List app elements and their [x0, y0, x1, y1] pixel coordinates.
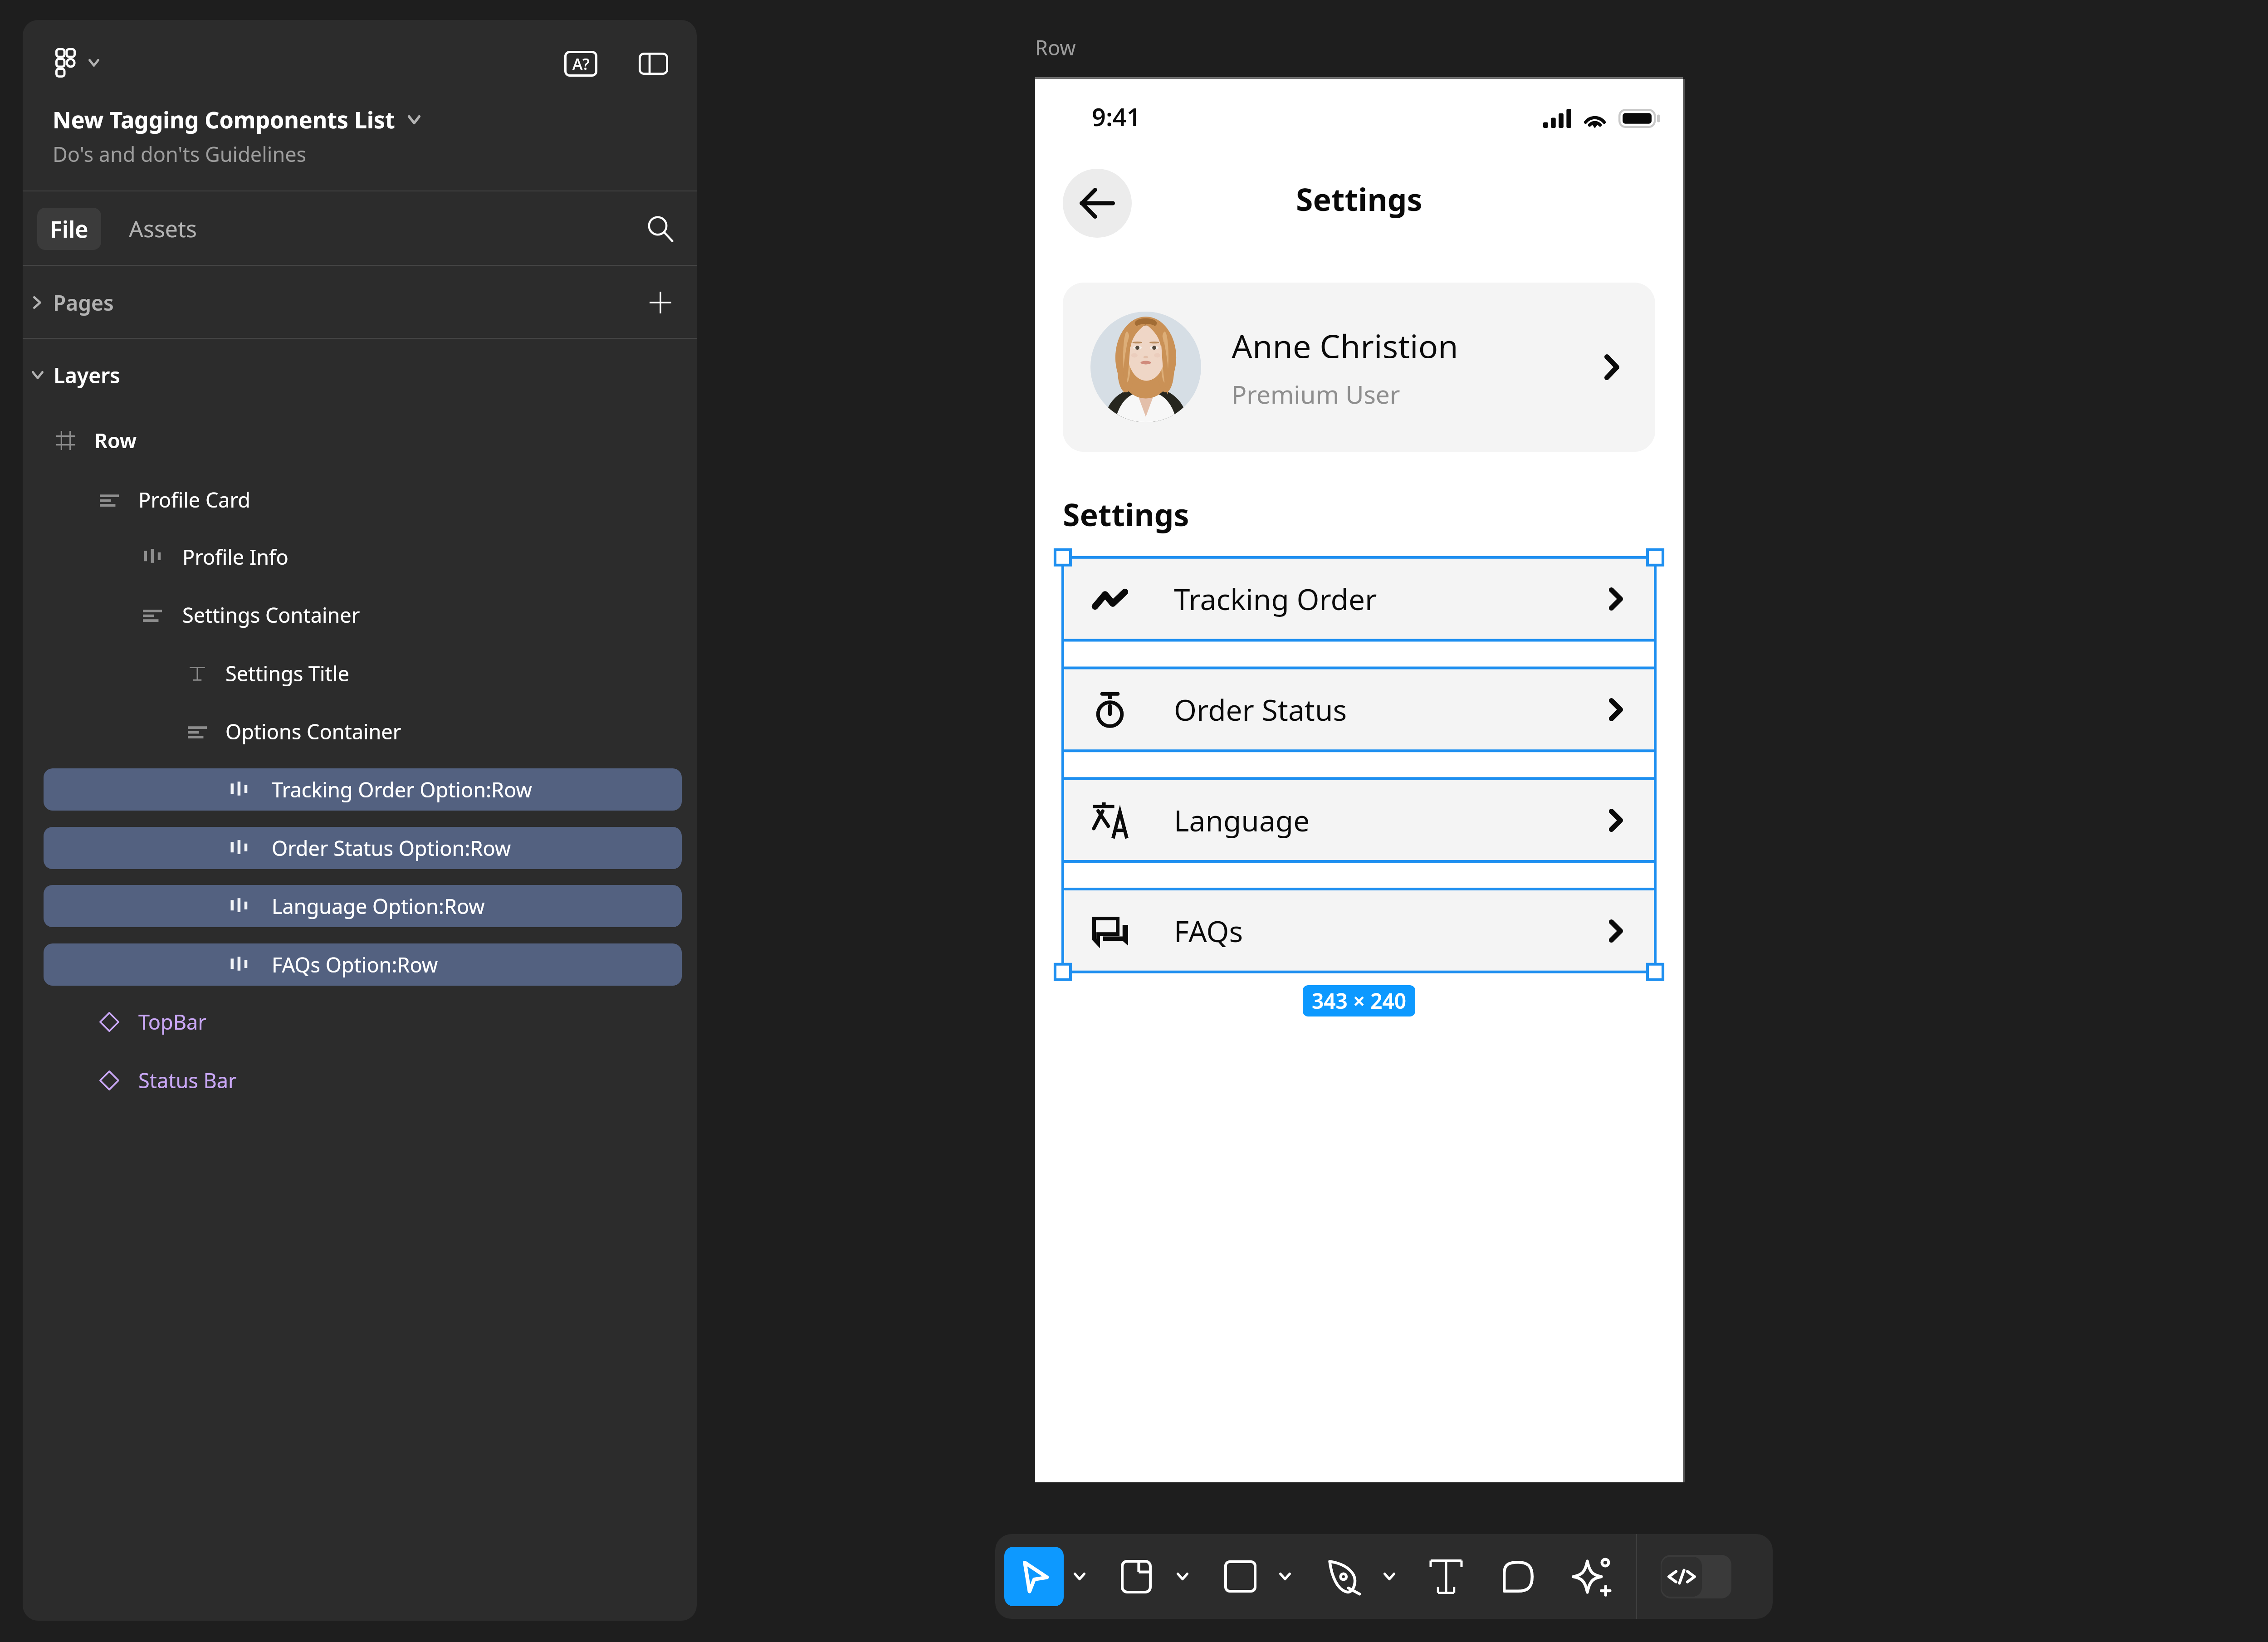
- staticText: FAQs Option:Row: [272, 951, 438, 978]
- button[interactable]: Row: [44, 419, 682, 461]
- staticText: 9:41: [1092, 100, 1141, 127]
- staticText: A?: [572, 54, 590, 74]
- button[interactable]: Profile Card: [44, 479, 682, 521]
- staticText: File: [50, 214, 88, 244]
- staticText: Row: [1035, 34, 1076, 61]
- staticText: 343 × 240: [1312, 987, 1407, 1015]
- button[interactable]: Pages: [23, 272, 697, 333]
- button[interactable]: Annotations: [558, 44, 603, 83]
- button[interactable]: File: [37, 208, 101, 250]
- button[interactable]: Options Container: [44, 710, 682, 753]
- button[interactable]: Profile Info: [44, 536, 682, 578]
- staticText: Anne Christion: [1232, 323, 1458, 358]
- button[interactable]: FAQs: [1063, 889, 1655, 972]
- staticText: Profile Info: [182, 543, 288, 571]
- staticText: Order Status Option:Row: [272, 834, 511, 862]
- staticText: Assets: [129, 213, 197, 244]
- staticText: Settings: [1063, 493, 1189, 535]
- staticText: Tracking Order Option:Row: [272, 776, 532, 803]
- staticText: New Tagging Components List: [53, 104, 395, 135]
- button[interactable]: Text tool: [1424, 1534, 1468, 1619]
- button[interactable]: Add page: [644, 286, 677, 319]
- button[interactable]: Settings Container: [44, 594, 682, 636]
- button[interactable]: Shape tool: [1218, 1534, 1262, 1619]
- staticText: Status Bar: [138, 1066, 237, 1094]
- staticText: FAQs: [1174, 911, 1243, 951]
- button[interactable]: Figma menu: [55, 40, 101, 85]
- button[interactable]: Toggle side panel: [631, 44, 676, 83]
- button[interactable]: Move tool options: [1058, 1534, 1101, 1619]
- button[interactable]: Pen tool: [1323, 1534, 1366, 1619]
- button[interactable]: Back: [1063, 169, 1132, 238]
- button[interactable]: TopBar: [44, 1001, 682, 1043]
- staticText: Pages: [53, 288, 114, 317]
- staticText: Premium User: [1232, 377, 1400, 404]
- button[interactable]: Status Bar: [44, 1059, 682, 1101]
- button[interactable]: FAQs Option:Row: [44, 943, 682, 986]
- button[interactable]: Frame options: [1161, 1534, 1204, 1619]
- button[interactable]: Assets: [120, 207, 206, 250]
- button[interactable]: Frame tool: [1114, 1534, 1158, 1619]
- staticText: Layers: [54, 361, 120, 390]
- button[interactable]: Dev mode: [1661, 1555, 1731, 1598]
- button[interactable]: Move tool: [1004, 1547, 1064, 1606]
- button[interactable]: Pen options: [1368, 1534, 1411, 1619]
- button[interactable]: Settings Title: [44, 652, 682, 694]
- button[interactable]: Search: [639, 207, 682, 250]
- staticText: Order Status: [1174, 690, 1347, 729]
- button[interactable]: Order Status Option:Row: [44, 827, 682, 869]
- staticText: Do's and don'ts Guidelines: [53, 140, 307, 168]
- staticText: Row: [94, 426, 137, 454]
- staticText: Language Option:Row: [272, 892, 485, 920]
- staticText: Options Container: [225, 718, 401, 745]
- staticText: Profile Card: [138, 486, 250, 513]
- button[interactable]: Tracking Order: [1063, 557, 1655, 640]
- button[interactable]: Tracking Order Option:Row: [44, 768, 682, 811]
- staticText: Settings Container: [182, 601, 360, 629]
- staticText: Settings Title: [225, 660, 349, 687]
- button[interactable]: Language: [1063, 779, 1655, 862]
- button[interactable]: Actions: [1569, 1534, 1613, 1619]
- staticText: Settings: [1296, 178, 1422, 220]
- button[interactable]: Layers: [23, 346, 697, 404]
- button[interactable]: Order Status: [1063, 668, 1655, 751]
- button[interactable]: Comment: [1496, 1534, 1540, 1619]
- button[interactable]: Anne Christion: [1063, 283, 1655, 452]
- staticText: Tracking Order: [1174, 579, 1377, 619]
- staticText: Language: [1174, 801, 1310, 840]
- button[interactable]: Shape options: [1263, 1534, 1307, 1619]
- staticText: TopBar: [138, 1008, 206, 1036]
- button[interactable]: Language Option:Row: [44, 885, 682, 927]
